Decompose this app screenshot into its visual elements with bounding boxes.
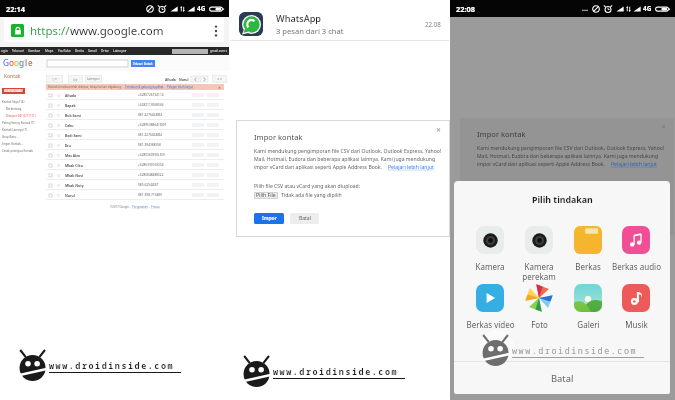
staticText: Pilih File: [256, 192, 276, 199]
staticText: Kontak tersebut telah diimpor, tetapi be…: [48, 85, 122, 89]
button[interactable]: Bub Sami: [46, 110, 224, 120]
staticText: Persyaratan: [132, 205, 148, 209]
button[interactable]: Paling Sering Kontak (7): [2, 119, 47, 126]
button[interactable]: Close: [660, 122, 668, 130]
button[interactable]: KONTAK BARU: [2, 88, 25, 94]
button[interactable]: [200, 76, 208, 82]
staticText: Kontak Lainnya (7): [2, 128, 27, 132]
staticText: Bub Sami: [65, 113, 138, 118]
staticText: Afiuda: [165, 77, 176, 81]
button[interactable]: WhatsApp: [230, 8, 449, 40]
button[interactable]: Nurul: [46, 190, 224, 200]
staticText: g: [19, 57, 25, 68]
staticText: 4G: [197, 4, 206, 13]
staticText: https://: [30, 23, 70, 39]
button[interactable]: Bapak: [46, 100, 224, 110]
button[interactable]: Cabu: [46, 120, 224, 130]
button[interactable]: Pelajari lebih lanjut: [611, 161, 657, 168]
staticText: Cabu: [65, 123, 138, 128]
button[interactable]: Grup Baru...: [2, 133, 47, 140]
button[interactable]: Lainnya ▾: [85, 75, 102, 83]
button[interactable]: Telusuri Kontak: [131, 60, 155, 67]
button[interactable]: Berkas: [563, 226, 612, 284]
staticText: +6285360950L5I9: [138, 153, 165, 157]
staticText: impor vCard dari aplikasi seperti Apple …: [477, 161, 605, 168]
button[interactable]: Galeri: [563, 284, 612, 342]
staticText: Diimpor 04/12/17 (11): [6, 114, 36, 118]
button[interactable]: Close: [435, 125, 443, 133]
button[interactable]: ☺▾: [68, 75, 83, 83]
button[interactable]: Mbak Novi: [46, 170, 224, 180]
staticText: +62895388641I007: [138, 123, 167, 127]
staticText: www.droidinside.com: [512, 345, 638, 356]
staticText: 081-22764248I4: [138, 113, 162, 117]
button[interactable]: [191, 76, 199, 82]
staticText: Telusuri Kontak: [133, 62, 153, 66]
button[interactable]: Kontak Saya (14): [2, 98, 47, 105]
staticText: Kamera perekam: [522, 261, 556, 283]
staticText: Mail, Hotmail, Eudora dan beberapa aplik…: [254, 156, 436, 163]
button[interactable]: ⊙ ▾: [212, 75, 227, 83]
button[interactable]: Mbak Nuty: [46, 180, 224, 190]
staticText: Bapak: [65, 103, 138, 108]
button[interactable]: Dismiss: [217, 85, 222, 90]
staticText: Batal: [551, 372, 574, 385]
staticText: Lainnya▾: [113, 49, 127, 53]
button[interactable]: Batal: [290, 213, 319, 224]
staticText: o: [9, 57, 14, 68]
staticText: Impor: [262, 215, 277, 222]
button[interactable]: Ibu: [46, 140, 224, 150]
staticText: ...: [582, 4, 588, 14]
button[interactable]: Impor: [254, 213, 284, 224]
staticText: 081-398-716489: [138, 193, 162, 197]
button[interactable]: Foto: [514, 284, 563, 342]
staticText: 081-22764248I4: [138, 133, 162, 137]
button[interactable]: Impor Kontak...: [2, 140, 47, 147]
staticText: Kamera: [475, 261, 505, 272]
button[interactable]: Pelajari lebih lanjut: [167, 85, 193, 89]
staticText: Berkas: [575, 261, 601, 272]
button[interactable]: Diimpor 04/12/17 (11): [6, 112, 47, 119]
button[interactable]: Berkas audio: [612, 226, 659, 284]
staticText: Privasi: [151, 205, 160, 209]
button[interactable]: Bodi Sami: [46, 130, 224, 140]
staticText: 22:08: [456, 4, 475, 14]
staticText: Berkas audio: [612, 261, 661, 272]
button[interactable]: Musik: [612, 284, 659, 342]
button[interactable]: Afiuda: [46, 90, 224, 100]
staticText: Kami mendukung pengimporan file CSV dari…: [254, 148, 442, 155]
staticText: G: [3, 57, 9, 68]
button[interactable]: Pilih File: [254, 192, 278, 199]
staticText: Telusuri: [12, 49, 24, 53]
staticText: Nurul: [179, 77, 189, 81]
button[interactable]: Mas Alex: [46, 150, 224, 160]
staticText: Pilih file CSV atau vCard yang akan diup…: [254, 183, 361, 190]
staticText: Tidak ada file yang dipilih: [281, 192, 342, 199]
button[interactable]: Cetak pratinjau Kontak: [2, 147, 47, 154]
button[interactable]: Kamera: [465, 226, 514, 284]
button[interactable]: Batal: [454, 362, 670, 394]
button[interactable]: https://: [4, 18, 224, 42]
staticText: www.droidinside.com: [49, 360, 175, 371]
staticText: Pilih file CSV atau vCard yang akan diup…: [477, 180, 584, 187]
button[interactable]: Berkas video: [465, 284, 514, 342]
button[interactable]: Temukan & gabung duplikat: [125, 85, 164, 89]
staticText: Impor Kontak...: [2, 142, 24, 146]
staticText: Gmail: [88, 49, 97, 53]
button[interactable]: Kamera perekam: [514, 226, 563, 284]
staticText: Gambar: [28, 49, 41, 53]
staticText: www.google.com: [70, 23, 164, 39]
staticText: KONTAK BARU: [4, 89, 23, 93]
button[interactable]: More options: [207, 19, 224, 42]
button[interactable]: Kontak Lainnya (7): [2, 126, 47, 133]
staticText: YouTube: [58, 49, 71, 53]
button[interactable]: Berbintang: [6, 105, 47, 112]
button[interactable]: Mbak Ciku: [46, 160, 224, 170]
button[interactable]: ◻ ▾: [46, 75, 63, 83]
button[interactable]: Pelajari lebih lanjut: [388, 164, 434, 171]
button[interactable]: [47, 60, 128, 67]
